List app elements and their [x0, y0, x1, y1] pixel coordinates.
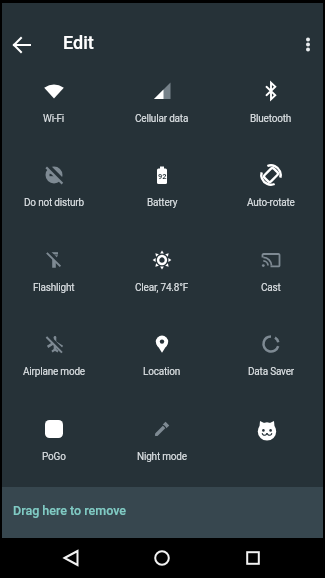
button[interactable]: Cellular data [108, 75, 216, 129]
button[interactable]: PoGo [0, 413, 108, 467]
staticText: Wi-Fi [43, 113, 65, 125]
staticText: Cellular data [135, 113, 189, 125]
staticText: Cast [261, 282, 281, 294]
button[interactable]: Airplane mode [0, 328, 108, 382]
staticText: Airplane mode [23, 366, 85, 378]
button[interactable]: Do not disturb [0, 159, 108, 213]
button[interactable] [146, 542, 178, 574]
staticText: Battery [147, 197, 178, 209]
button[interactable]: Flashlight [0, 244, 108, 298]
staticText: Night mode [137, 451, 187, 463]
button[interactable]: Clear, 74.8°F [108, 244, 216, 298]
button[interactable]: Location [108, 328, 216, 382]
button[interactable]: Bluetooth [217, 75, 325, 129]
staticText: PoGo [42, 451, 66, 463]
staticText: Clear, 74.8°F [135, 282, 189, 294]
button[interactable]: Cast [217, 244, 325, 298]
button[interactable]: Auto-rotate [217, 159, 325, 213]
staticText: Do not disturb [24, 197, 84, 209]
button[interactable] [237, 542, 269, 574]
staticText: Flashlight [33, 282, 75, 294]
button[interactable] [296, 33, 320, 57]
staticText: Edit [63, 32, 94, 53]
staticText: Location [143, 366, 181, 378]
button[interactable]: 92 [108, 159, 216, 213]
staticText: 92 [158, 172, 167, 181]
button[interactable]: Wi-Fi [0, 75, 108, 129]
staticText: Bluetooth [250, 113, 292, 125]
button[interactable]: Night mode [108, 413, 216, 467]
button[interactable] [10, 36, 34, 60]
staticText: Data Saver [248, 366, 294, 378]
button[interactable]: Data Saver [217, 328, 325, 382]
staticText: Auto-rotate [247, 197, 295, 209]
staticText: Drag here to remove [13, 503, 127, 518]
button[interactable] [55, 542, 87, 574]
button[interactable] [213, 415, 321, 469]
